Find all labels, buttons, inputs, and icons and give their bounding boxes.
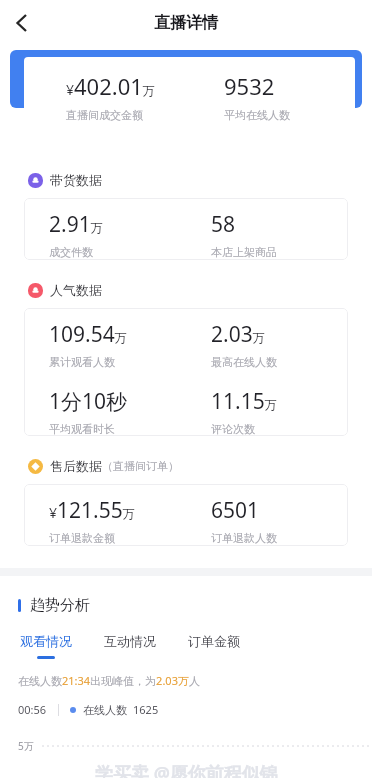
staticText: 学买卖 @愿你前程似锦: [95, 761, 278, 778]
staticText: 在线人数21:34出现峰值，为2.03万人: [18, 673, 200, 688]
staticText: 本店上架商品: [211, 245, 277, 259]
staticText: 9532: [224, 71, 275, 101]
staticText: 1分10秒: [49, 387, 128, 416]
staticText: 6501: [211, 496, 260, 525]
staticText: 1625: [133, 702, 159, 717]
staticText: 趋势分析: [30, 596, 90, 615]
staticText: 109.54万: [49, 320, 127, 349]
staticText: 评论次数: [211, 422, 255, 436]
staticText: （直播间订单）: [102, 459, 179, 473]
staticText: 售后数据: [50, 458, 102, 474]
staticText: 2.03万: [211, 320, 265, 349]
button[interactable]: 互动情况: [102, 631, 158, 661]
staticText: 人气数据: [50, 282, 102, 298]
staticText: 累计观看人数: [49, 355, 115, 369]
staticText: 平均观看时长: [49, 422, 115, 436]
staticText: 最高在线人数: [211, 355, 277, 369]
staticText: ¥121.55万: [49, 496, 135, 525]
staticText: 直播间成交金额: [66, 108, 143, 122]
staticText: 58: [211, 210, 236, 239]
staticText: ¥402.01万: [66, 71, 155, 101]
button[interactable]: 订单金额: [186, 631, 242, 661]
staticText: 带货数据: [50, 172, 102, 188]
staticText: 在线人数: [83, 703, 127, 717]
button[interactable]: 观看情况: [18, 631, 74, 661]
staticText: 11.15万: [211, 387, 277, 416]
staticText: 观看情况: [20, 633, 72, 649]
staticText: 5万: [18, 739, 34, 753]
staticText: 互动情况: [104, 633, 156, 649]
staticText: 00:56: [18, 702, 47, 717]
staticText: 2.91万: [49, 210, 103, 239]
staticText: 订单金额: [188, 633, 240, 649]
staticText: 订单退款人数: [211, 531, 277, 545]
staticText: 订单退款金额: [49, 531, 115, 545]
button[interactable]: Back: [2, 3, 42, 43]
staticText: 直播详情: [154, 13, 218, 33]
staticText: 成交件数: [49, 245, 93, 259]
staticText: 平均在线人数: [224, 108, 290, 122]
